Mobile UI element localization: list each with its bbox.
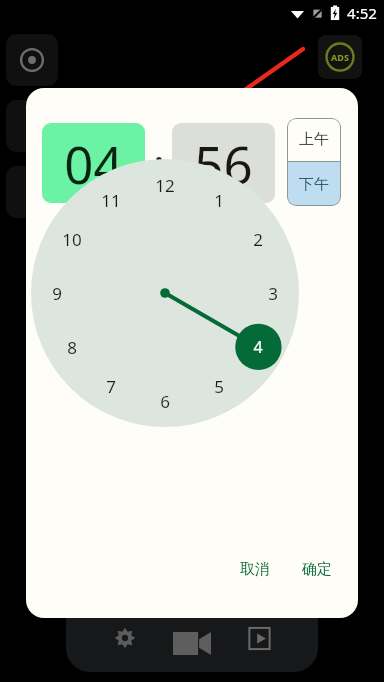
staticText: 3: [268, 282, 278, 305]
staticText: 10: [62, 228, 82, 251]
staticText: 取消: [240, 560, 270, 579]
button[interactable]: Tool option 3: [6, 166, 58, 218]
staticText: 确定: [302, 560, 332, 579]
staticText: 11: [101, 189, 121, 212]
staticText: ADS: [331, 51, 349, 63]
button[interactable]: Clock dial, 4 o'clock selected: [31, 159, 299, 427]
button[interactable]: 56: [172, 123, 275, 203]
button[interactable]: 上午: [287, 118, 341, 161]
button[interactable]: 取消: [228, 553, 282, 586]
staticText: 1: [214, 189, 224, 212]
staticText: 4: [253, 336, 263, 358]
staticText: :: [153, 135, 165, 192]
button[interactable]: 04: [42, 123, 145, 203]
button[interactable]: Remove ads: [318, 35, 362, 79]
staticText: 5: [214, 375, 224, 398]
staticText: 9: [52, 282, 62, 305]
staticText: 12: [155, 174, 175, 197]
staticText: 7: [106, 375, 116, 398]
button[interactable]: Settings: [107, 620, 143, 656]
button[interactable]: 下午: [287, 162, 341, 206]
staticText: 56: [194, 129, 253, 198]
button[interactable]: Record video: [169, 620, 215, 666]
staticText: 2: [253, 228, 263, 251]
button[interactable]: Gallery: [241, 620, 277, 656]
button[interactable]: 确定: [290, 553, 344, 586]
staticText: 04: [64, 129, 123, 198]
staticText: 8: [67, 336, 77, 359]
button[interactable]: Tool option 1: [6, 34, 58, 86]
staticText: 下午: [299, 175, 329, 194]
staticText: 4:52: [347, 3, 377, 23]
button[interactable]: Tool option 2: [6, 100, 58, 152]
staticText: 6: [160, 390, 170, 413]
staticText: 上午: [299, 130, 329, 149]
